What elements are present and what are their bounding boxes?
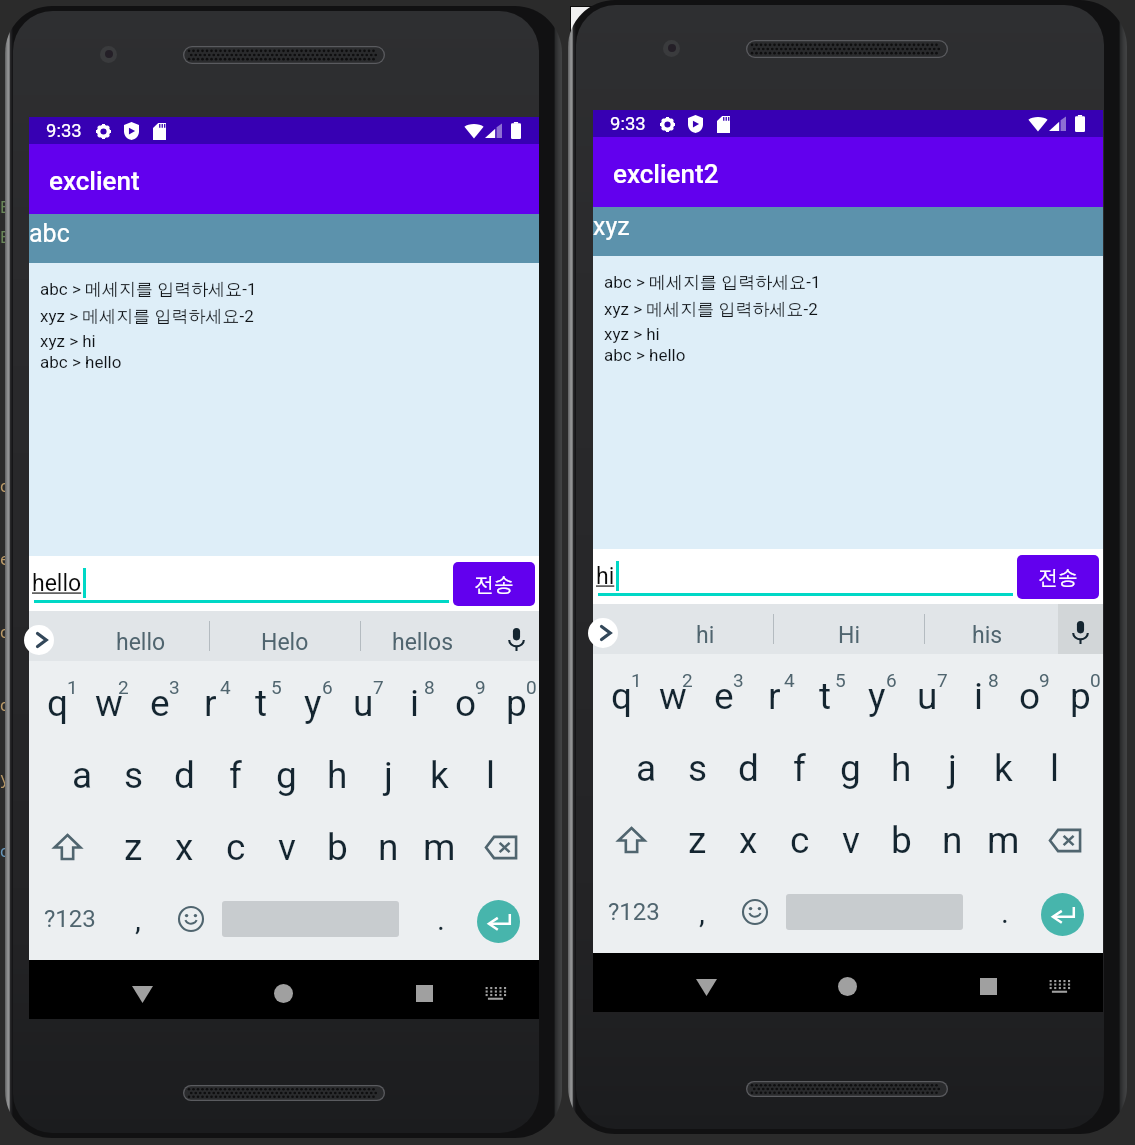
- button[interactable]: v: [261, 811, 312, 883]
- button[interactable]: Home: [824, 960, 870, 1006]
- button[interactable]: .: [983, 876, 1026, 948]
- button[interactable]: ,: [111, 883, 165, 955]
- button[interactable]: Enter: [1027, 876, 1104, 948]
- button[interactable]: q: [596, 660, 647, 732]
- button[interactable]: hi: [645, 610, 765, 660]
- button[interactable]: l: [1029, 732, 1080, 804]
- button[interactable]: Home: [260, 967, 306, 1013]
- button[interactable]: p: [1055, 660, 1106, 732]
- button[interactable]: ?123: [593, 876, 675, 948]
- button[interactable]: y: [851, 660, 902, 732]
- button[interactable]: x: [723, 804, 774, 876]
- button[interactable]: t: [236, 667, 287, 739]
- button[interactable]: Recents: [401, 967, 447, 1013]
- button[interactable]: g: [261, 739, 312, 811]
- button[interactable]: Shift: [29, 811, 106, 883]
- button[interactable]: i: [389, 667, 440, 739]
- button[interactable]: z: [108, 811, 159, 883]
- button[interactable]: l: [465, 739, 516, 811]
- button[interactable]: j: [927, 732, 978, 804]
- button[interactable]: Back: [119, 967, 165, 1013]
- button[interactable]: Emoji: [164, 883, 218, 955]
- button[interactable]: ,: [675, 876, 729, 948]
- staticText: ?123: [44, 905, 96, 933]
- button[interactable]: his: [927, 610, 1047, 660]
- button[interactable]: c: [210, 811, 261, 883]
- staticText: g: [840, 747, 861, 790]
- button[interactable]: Shift: [593, 804, 670, 876]
- button[interactable]: Expand suggestions: [24, 625, 54, 655]
- button[interactable]: b: [312, 811, 363, 883]
- button[interactable]: 전송: [453, 562, 535, 606]
- button[interactable]: Recents: [965, 960, 1011, 1006]
- staticText: p: [1070, 675, 1091, 718]
- staticText: abc: [29, 219, 70, 248]
- staticText: n: [942, 819, 963, 862]
- button[interactable]: k: [414, 739, 465, 811]
- button[interactable]: Switch keyboard: [1038, 962, 1080, 1004]
- button[interactable]: d: [159, 739, 210, 811]
- button[interactable]: a: [57, 739, 108, 811]
- button[interactable]: Voice input: [1058, 604, 1103, 654]
- button[interactable]: o: [440, 667, 491, 739]
- staticText: b: [327, 826, 348, 869]
- button[interactable]: b: [876, 804, 927, 876]
- button[interactable]: f: [210, 739, 261, 811]
- button[interactable]: k: [978, 732, 1029, 804]
- button[interactable]: hello: [81, 617, 201, 667]
- button[interactable]: r: [185, 667, 236, 739]
- button[interactable]: w: [83, 667, 134, 739]
- button[interactable]: .: [419, 883, 462, 955]
- button[interactable]: Backspace: [463, 811, 540, 883]
- staticText: e: [714, 675, 734, 718]
- staticText: t: [819, 675, 832, 718]
- button[interactable]: Backspace: [1027, 804, 1104, 876]
- button[interactable]: 전송: [1017, 555, 1099, 599]
- button[interactable]: Expand suggestions: [588, 618, 618, 648]
- button[interactable]: a: [621, 732, 672, 804]
- button[interactable]: j: [363, 739, 414, 811]
- button[interactable]: g: [825, 732, 876, 804]
- button[interactable]: p: [491, 667, 542, 739]
- button[interactable]: ?123: [29, 883, 111, 955]
- button[interactable]: Emoji: [728, 876, 782, 948]
- button[interactable]: Back: [683, 960, 729, 1006]
- button[interactable]: q: [32, 667, 83, 739]
- button[interactable]: u: [902, 660, 953, 732]
- button[interactable]: Switch keyboard: [474, 969, 516, 1011]
- button[interactable]: z: [672, 804, 723, 876]
- button[interactable]: Hi: [789, 610, 909, 660]
- button[interactable]: Helo: [225, 617, 345, 667]
- button[interactable]: e: [698, 660, 749, 732]
- button[interactable]: x: [159, 811, 210, 883]
- button[interactable]: n: [927, 804, 978, 876]
- button[interactable]: w: [647, 660, 698, 732]
- staticText: p: [506, 682, 527, 725]
- button[interactable]: n: [363, 811, 414, 883]
- button[interactable]: c: [774, 804, 825, 876]
- button[interactable]: e: [134, 667, 185, 739]
- button[interactable]: r: [749, 660, 800, 732]
- button[interactable]: f: [774, 732, 825, 804]
- button[interactable]: u: [338, 667, 389, 739]
- staticText: E: [0, 226, 10, 248]
- staticText: 0: [526, 676, 537, 698]
- button[interactable]: o: [1004, 660, 1055, 732]
- button[interactable]: d: [723, 732, 774, 804]
- button[interactable]: m: [414, 811, 465, 883]
- button[interactable]: t: [800, 660, 851, 732]
- button[interactable]: v: [825, 804, 876, 876]
- button[interactable]: i: [953, 660, 1004, 732]
- button[interactable]: s: [672, 732, 723, 804]
- button[interactable]: s: [108, 739, 159, 811]
- button[interactable]: hellos: [363, 617, 483, 667]
- staticText: 2: [682, 669, 693, 691]
- button[interactable]: h: [312, 739, 363, 811]
- button[interactable]: Enter: [463, 883, 540, 955]
- button[interactable]: y: [287, 667, 338, 739]
- button[interactable]: m: [978, 804, 1029, 876]
- button[interactable]: Voice input: [494, 611, 539, 661]
- button[interactable]: h: [876, 732, 927, 804]
